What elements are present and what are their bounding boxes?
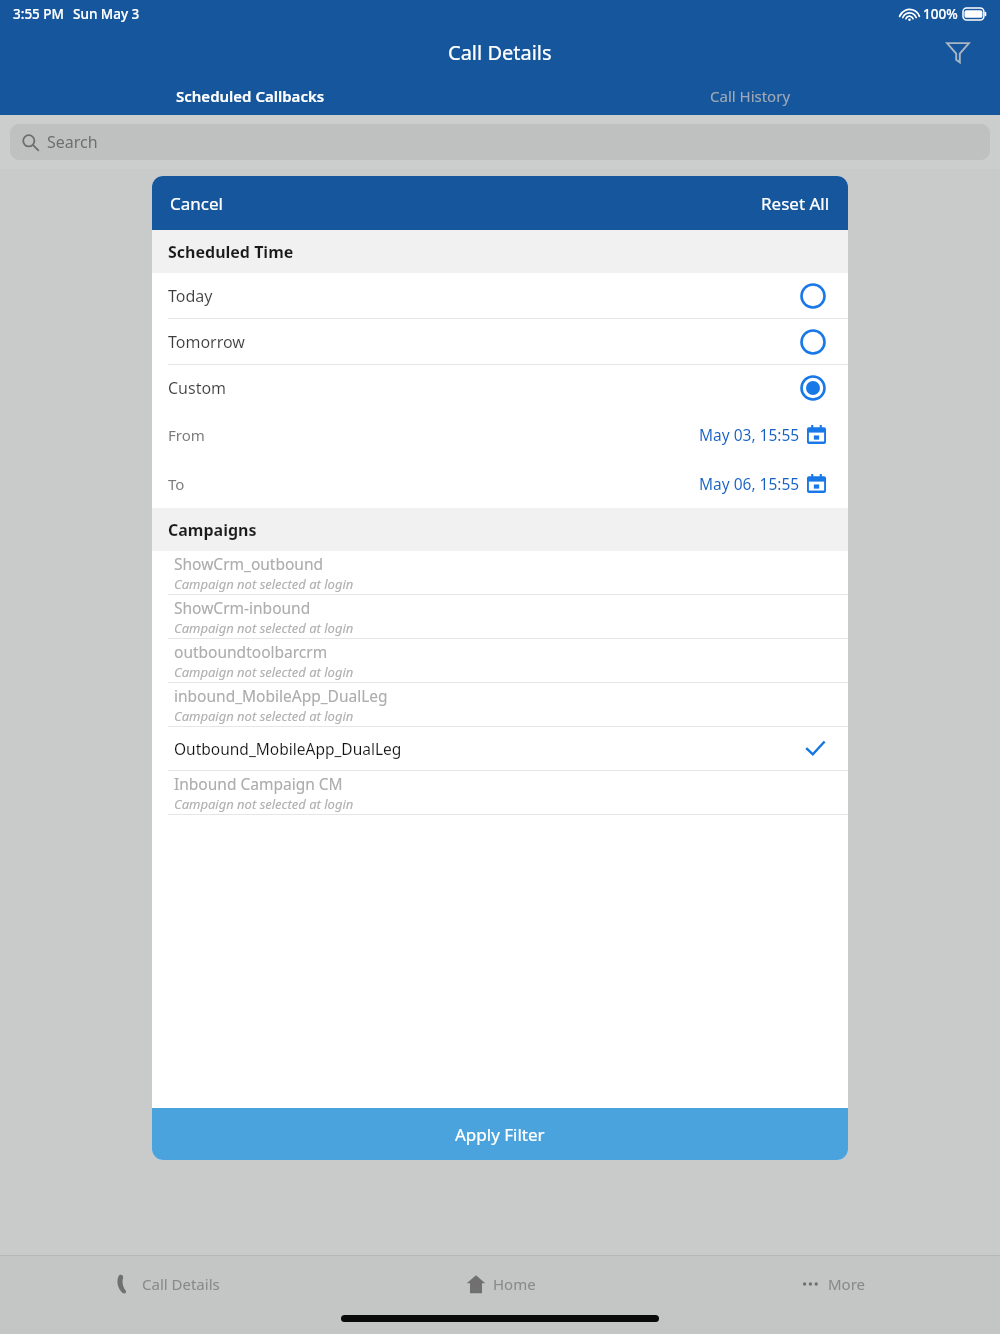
staticText: Tomorrow xyxy=(168,331,245,353)
button[interactable]: To xyxy=(152,459,848,508)
staticText: 3:55 PM xyxy=(13,5,64,23)
staticText: Scheduled Callbacks xyxy=(176,86,325,106)
button[interactable]: Home xyxy=(334,1256,667,1312)
button[interactable]: Cancel xyxy=(152,184,237,223)
staticText: Campaign not selected at login xyxy=(174,619,354,637)
button[interactable]: More xyxy=(667,1256,1000,1312)
button[interactable]: Apply Filter xyxy=(152,1108,848,1160)
button[interactable]: From xyxy=(152,410,848,459)
staticText: inbound_MobileApp_DualLeg xyxy=(174,685,388,706)
button[interactable]: Reset All xyxy=(747,184,848,223)
button[interactable]: outboundtoolbarcrm xyxy=(152,639,848,682)
staticText: Home xyxy=(493,1274,536,1294)
staticText: ShowCrm_outbound xyxy=(174,553,324,574)
staticText: Apply Filter xyxy=(455,1123,545,1146)
staticText: Search xyxy=(47,131,98,153)
button[interactable]: Inbound Campaign CM xyxy=(152,771,848,814)
button[interactable]: Custom xyxy=(152,365,848,410)
staticText: Sun May 3 xyxy=(73,5,140,23)
staticText: Call Details xyxy=(448,39,552,66)
staticText: Today xyxy=(168,285,213,307)
staticText: Call History xyxy=(710,86,791,106)
button[interactable]: Call History xyxy=(500,76,1000,115)
staticText: Campaign not selected at login xyxy=(174,575,354,593)
button[interactable]: ShowCrm-inbound xyxy=(152,595,848,638)
staticText: Cancel xyxy=(170,192,223,215)
staticText: outboundtoolbarcrm xyxy=(174,641,328,662)
staticText: Campaign not selected at login xyxy=(174,795,354,813)
staticText: From xyxy=(168,425,205,445)
staticText: Custom xyxy=(168,377,227,399)
staticText: Call Details xyxy=(142,1274,220,1294)
button[interactable]: Search xyxy=(10,124,990,160)
button[interactable]: ShowCrm_outbound xyxy=(152,551,848,594)
button[interactable]: inbound_MobileApp_DualLeg xyxy=(152,683,848,726)
staticText: Campaigns xyxy=(168,519,257,541)
button[interactable]: Filter xyxy=(938,32,978,72)
button[interactable]: Tomorrow xyxy=(152,319,848,364)
staticText: May 06, 15:55 xyxy=(699,473,800,494)
staticText: Inbound Campaign CM xyxy=(174,773,343,794)
staticText: Scheduled Time xyxy=(168,241,294,263)
staticText: To xyxy=(168,474,185,494)
staticText: Reset All xyxy=(761,192,830,215)
button[interactable]: Today xyxy=(152,273,848,318)
staticText: 100% xyxy=(923,5,958,23)
button[interactable]: Scheduled Callbacks xyxy=(0,76,500,115)
staticText: Campaign not selected at login xyxy=(174,707,354,725)
button[interactable]: Outbound_MobileApp_DualLeg xyxy=(152,727,848,770)
staticText: Campaign not selected at login xyxy=(174,663,354,681)
staticText: May 03, 15:55 xyxy=(699,424,800,445)
staticText: More xyxy=(828,1274,866,1294)
staticText: Outbound_MobileApp_DualLeg xyxy=(174,738,402,759)
button[interactable]: Call Details xyxy=(0,1256,334,1312)
staticText: ShowCrm-inbound xyxy=(174,597,311,618)
